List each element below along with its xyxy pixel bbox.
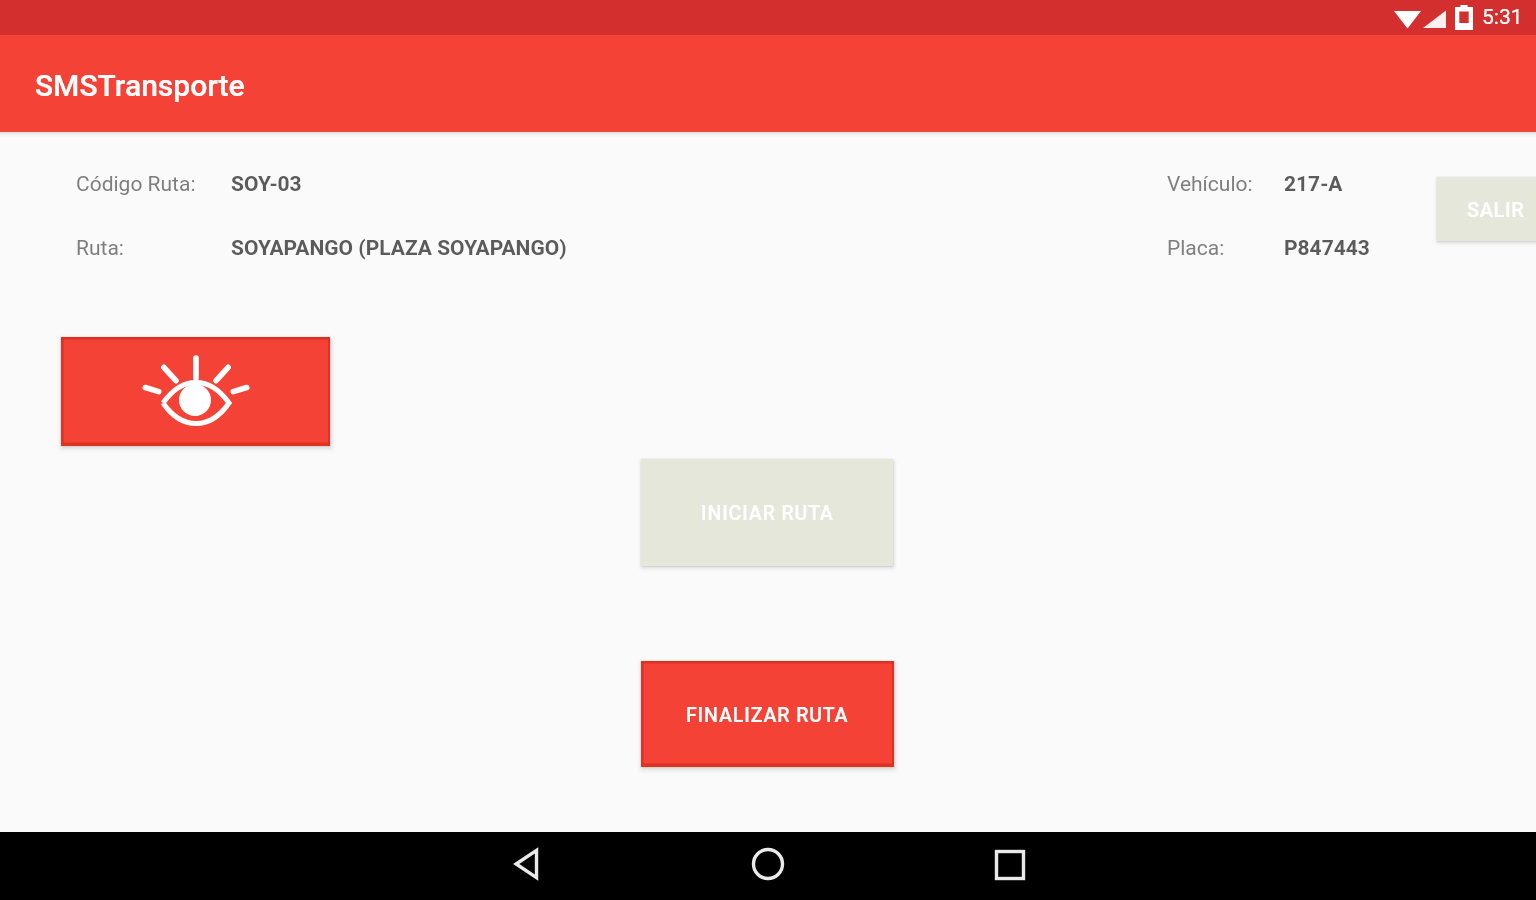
button[interactable]: Back <box>499 836 555 892</box>
button[interactable]: INICIAR RUTA <box>641 459 893 566</box>
staticText: P847443 <box>1284 236 1370 261</box>
button[interactable]: Ver ruta <box>61 337 330 446</box>
staticText: INICIAR RUTA <box>701 502 834 525</box>
staticText: FINALIZAR RUTA <box>686 704 849 727</box>
button[interactable]: Home <box>740 836 796 892</box>
staticText: SOYAPANGO (PLAZA SOYAPANGO) <box>231 236 567 261</box>
staticText: Ruta: <box>76 236 124 261</box>
staticText: Vehículo: <box>1167 172 1253 197</box>
button[interactable]: FINALIZAR RUTA <box>641 661 894 767</box>
staticText: Código Ruta: <box>76 172 196 197</box>
staticText: SMSTransporte <box>35 68 245 103</box>
button[interactable]: Recents <box>982 837 1038 893</box>
staticText: SOY-03 <box>231 172 302 197</box>
staticText: SALIR <box>1467 198 1525 221</box>
staticText: Placa: <box>1167 236 1225 261</box>
staticText: 5:31 <box>1482 5 1523 30</box>
staticText: 217-A <box>1284 172 1343 197</box>
button[interactable]: SALIR <box>1437 177 1536 241</box>
